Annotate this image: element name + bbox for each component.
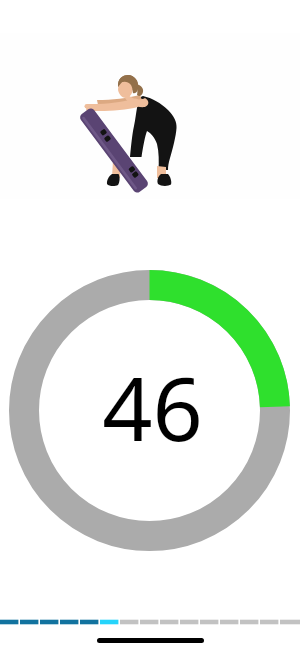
button[interactable]: Exercise timer (9, 270, 290, 551)
button[interactable] (0, 33, 300, 199)
staticText: 46 (102, 347, 203, 467)
